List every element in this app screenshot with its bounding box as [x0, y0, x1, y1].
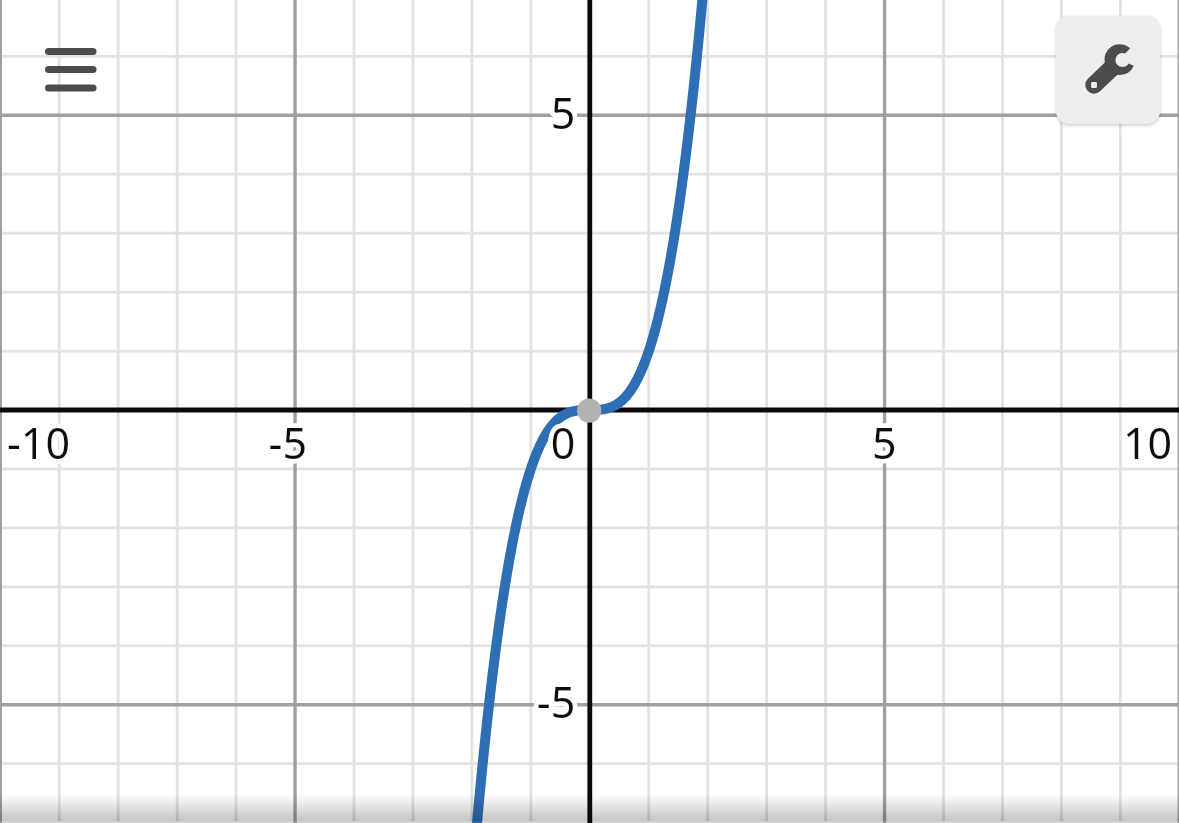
button[interactable]: Tools [1056, 16, 1160, 124]
button[interactable]: Menu [38, 36, 110, 104]
